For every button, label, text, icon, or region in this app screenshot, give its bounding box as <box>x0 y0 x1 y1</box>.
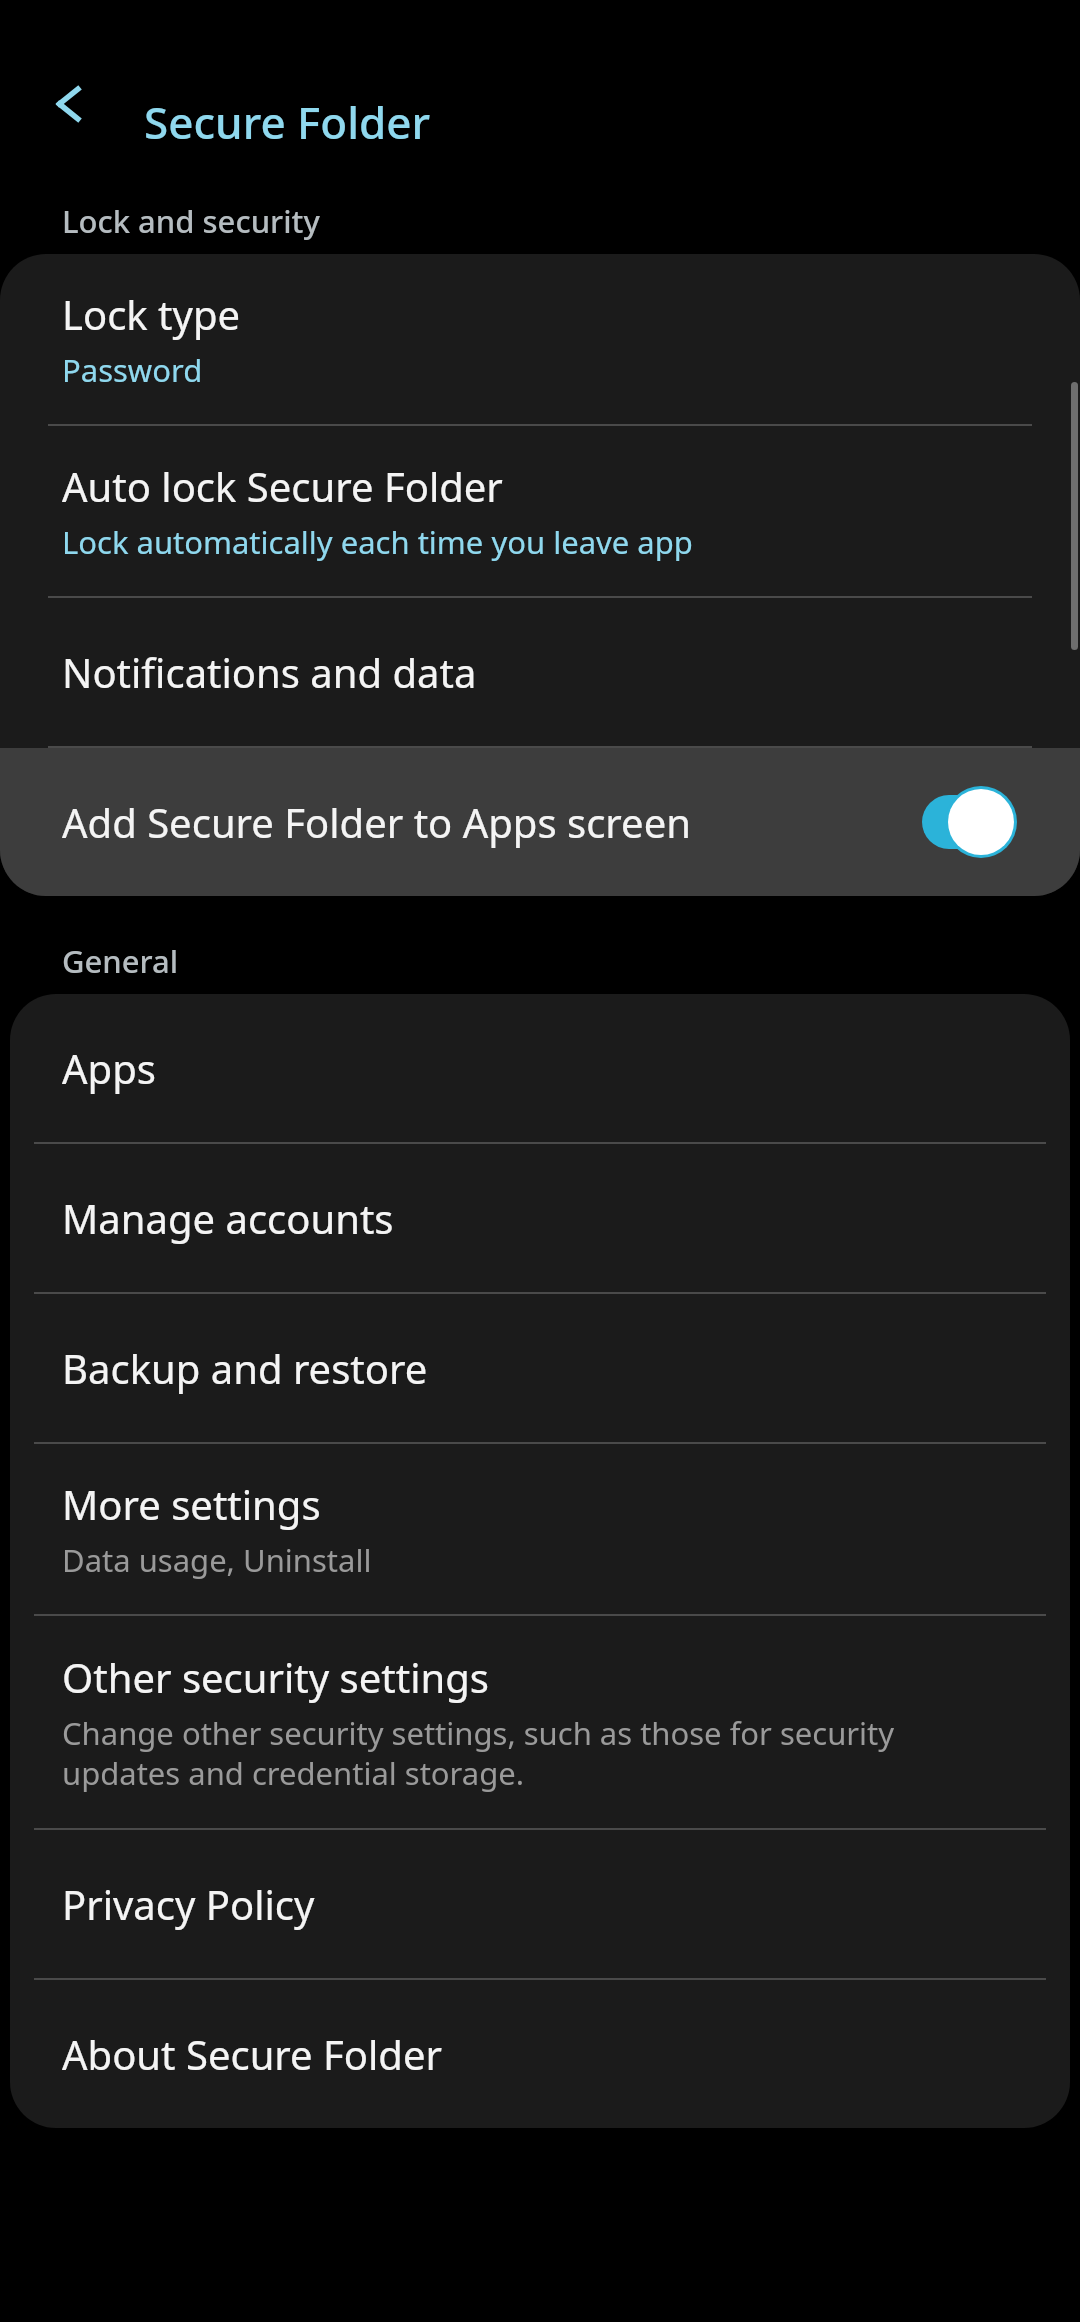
button[interactable]: Notifications and data <box>0 598 1080 746</box>
staticText: Lock automatically each time you leave a… <box>62 521 693 563</box>
staticText: Other security settings <box>62 1650 489 1704</box>
button[interactable]: About Secure Folder <box>10 1980 1070 2128</box>
staticText: More settings <box>62 1477 321 1531</box>
staticText: Apps <box>62 1041 156 1095</box>
button[interactable]: Auto lock Secure Folder <box>0 426 1080 596</box>
button[interactable]: Add Secure Folder to Apps screen <box>0 748 1080 896</box>
button[interactable]: More settings <box>10 1444 1070 1614</box>
staticText: Backup and restore <box>62 1341 428 1395</box>
staticText: Add Secure Folder to Apps screen <box>62 795 922 849</box>
staticText: General <box>62 940 179 982</box>
button[interactable]: Backup and restore <box>10 1294 1070 1442</box>
staticText: Password <box>62 349 203 391</box>
button[interactable]: Lock type <box>0 254 1080 424</box>
staticText: Manage accounts <box>62 1191 394 1245</box>
staticText: Lock and security <box>62 200 320 242</box>
staticText: Change other security settings, such as … <box>62 1712 1014 1794</box>
staticText: Data usage, Uninstall <box>62 1539 372 1581</box>
staticText: Notifications and data <box>62 645 477 699</box>
staticText: Privacy Policy <box>62 1877 315 1931</box>
staticText: Lock type <box>62 287 241 341</box>
staticText: About Secure Folder <box>62 2027 442 2081</box>
staticText: Secure Folder <box>144 92 431 152</box>
button[interactable]: Privacy Policy <box>10 1830 1070 1978</box>
button[interactable]: Apps <box>10 994 1070 1142</box>
button[interactable]: Manage accounts <box>10 1144 1070 1292</box>
button[interactable]: Back <box>34 68 106 140</box>
button[interactable]: Add Secure Folder to Apps screen toggle <box>922 784 1018 860</box>
button[interactable]: Other security settings <box>10 1616 1070 1828</box>
staticText: Auto lock Secure Folder <box>62 459 503 513</box>
